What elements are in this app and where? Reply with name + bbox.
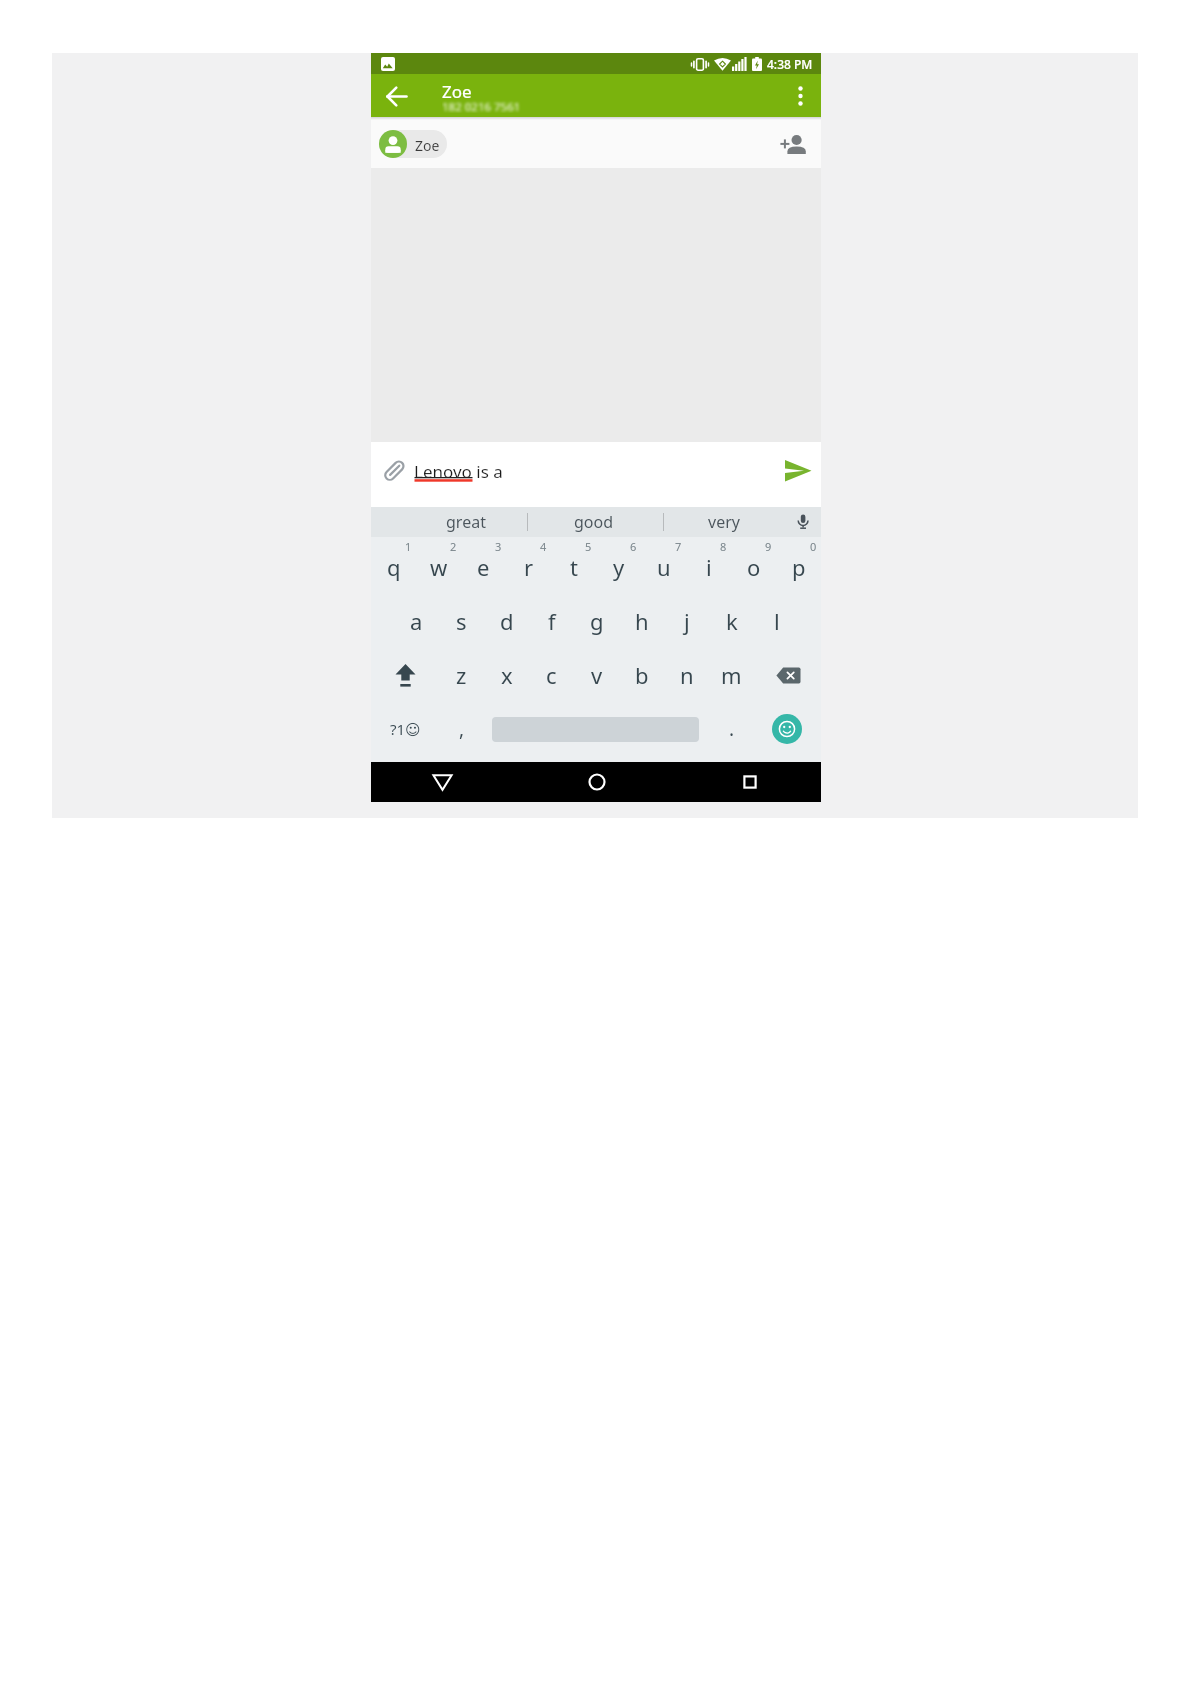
staticText: 9: [765, 539, 772, 553]
button[interactable]: .: [709, 702, 754, 756]
button[interactable]: [782, 78, 818, 114]
button[interactable]: i: [686, 540, 731, 594]
staticText: y: [613, 552, 625, 582]
staticText: a: [410, 606, 423, 636]
button[interactable]: [779, 455, 817, 487]
staticText: q: [387, 552, 401, 582]
staticText: ,: [459, 716, 465, 742]
button[interactable]: o: [731, 540, 776, 594]
button[interactable]: x: [484, 648, 529, 702]
button[interactable]: q: [371, 540, 416, 594]
button[interactable]: g: [574, 594, 619, 648]
staticText: k: [726, 606, 738, 636]
button[interactable]: w: [416, 540, 461, 594]
staticText: z: [456, 660, 467, 690]
button[interactable]: j: [664, 594, 709, 648]
staticText: v: [591, 660, 603, 690]
staticText: 4: [540, 539, 547, 553]
button[interactable]: [727, 764, 772, 800]
staticText: h: [635, 606, 649, 636]
button[interactable]: [371, 648, 439, 702]
button[interactable]: [772, 714, 802, 744]
staticText: s: [456, 606, 467, 636]
button[interactable]: f: [529, 594, 574, 648]
button[interactable]: b: [619, 648, 664, 702]
staticText: 7: [675, 539, 682, 553]
button[interactable]: [379, 78, 415, 114]
staticText: 8: [720, 539, 727, 553]
staticText: b: [635, 660, 649, 690]
button[interactable]: p: [776, 540, 821, 594]
button[interactable]: z: [439, 648, 484, 702]
staticText: 2: [450, 539, 457, 553]
staticText: o: [747, 552, 761, 582]
staticText: m: [721, 660, 742, 690]
button[interactable]: n: [664, 648, 709, 702]
staticText: 1: [405, 539, 412, 553]
button[interactable]: c: [529, 648, 574, 702]
button[interactable]: a: [394, 594, 439, 648]
button[interactable]: u: [641, 540, 686, 594]
staticText: ?1☺: [390, 719, 421, 739]
button[interactable]: t: [551, 540, 596, 594]
staticText: e: [477, 552, 490, 582]
staticText: f: [548, 606, 556, 636]
staticText: Zoe: [442, 80, 472, 100]
button[interactable]: [377, 453, 411, 489]
staticText: i: [706, 552, 712, 582]
button[interactable]: [420, 764, 465, 800]
button[interactable]: [776, 129, 812, 159]
staticText: 4:38 PM: [767, 56, 813, 71]
staticText: p: [792, 552, 806, 582]
button[interactable]: [789, 507, 817, 537]
staticText: r: [524, 552, 534, 582]
staticText: 3: [495, 539, 502, 553]
button[interactable]: k: [709, 594, 754, 648]
staticText: .: [729, 716, 735, 742]
button[interactable]: r: [506, 540, 551, 594]
staticText: u: [657, 552, 671, 582]
button[interactable]: [574, 764, 619, 800]
button[interactable]: very: [669, 507, 779, 537]
button[interactable]: [754, 648, 822, 702]
staticText: w: [430, 552, 448, 582]
staticText: j: [684, 606, 690, 636]
button[interactable]: ,: [439, 702, 484, 756]
button[interactable]: y: [596, 540, 641, 594]
staticText: t: [570, 552, 578, 582]
staticText: 182 0216 7561: [442, 99, 521, 113]
staticText: x: [501, 660, 513, 690]
staticText: Zoe: [415, 136, 440, 152]
staticText: 5: [585, 539, 592, 553]
button[interactable]: good: [539, 507, 649, 537]
staticText: g: [590, 606, 604, 636]
staticText: 6: [630, 539, 637, 553]
button[interactable]: ?1☺: [377, 702, 433, 756]
staticText: c: [546, 660, 557, 690]
staticText: good: [574, 511, 614, 533]
button[interactable]: e: [461, 540, 506, 594]
staticText: n: [680, 660, 694, 690]
button[interactable]: h: [619, 594, 664, 648]
staticText: d: [500, 606, 514, 636]
staticText: great: [446, 511, 486, 533]
button[interactable]: great: [411, 507, 521, 537]
button[interactable]: s: [439, 594, 484, 648]
button[interactable]: d: [484, 594, 529, 648]
staticText: Lenovo is a: [414, 460, 503, 481]
staticText: l: [774, 606, 780, 636]
button[interactable]: [384, 130, 447, 158]
button[interactable]: m: [709, 648, 754, 702]
button[interactable]: v: [574, 648, 619, 702]
staticText: very: [708, 511, 740, 533]
staticText: 0: [810, 539, 817, 553]
button[interactable]: l: [754, 594, 799, 648]
